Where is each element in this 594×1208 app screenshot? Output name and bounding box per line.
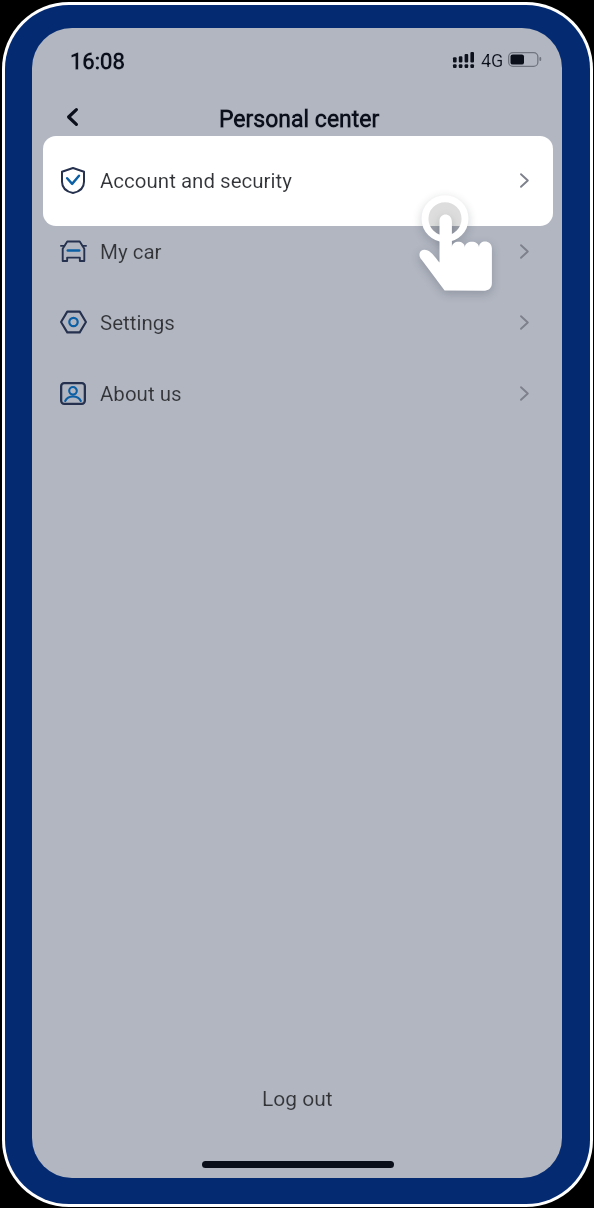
staticText: My car [100, 240, 162, 264]
staticText: Personal center [219, 106, 380, 133]
staticText: Log out [262, 1087, 333, 1112]
button[interactable]: Settings [43, 287, 552, 358]
staticText: 4G [481, 50, 504, 71]
staticText: Account and security [100, 169, 292, 193]
staticText: About us [100, 382, 182, 406]
button[interactable]: About us [43, 358, 552, 429]
staticText: Settings [100, 311, 175, 335]
button[interactable]: Account and security [43, 145, 552, 216]
button[interactable]: Log out [32, 1076, 562, 1122]
button[interactable]: Back [51, 96, 93, 138]
staticText: 16:08 [70, 49, 125, 75]
button[interactable]: My car [43, 216, 552, 287]
